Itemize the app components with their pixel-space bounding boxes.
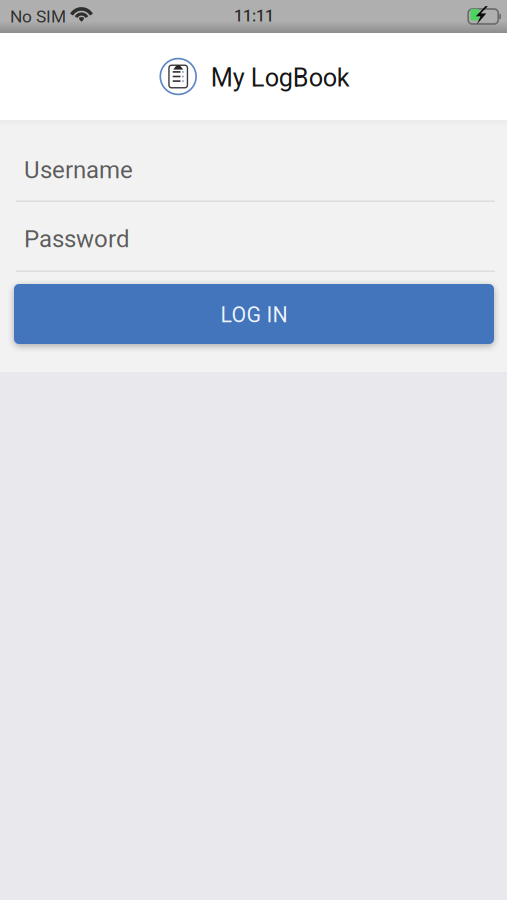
staticText: My LogBook bbox=[211, 63, 350, 93]
staticText: Username bbox=[24, 156, 133, 184]
button[interactable]: Username bbox=[0, 120, 507, 200]
staticText: Password bbox=[24, 225, 130, 253]
staticText: 11:11 bbox=[234, 7, 274, 25]
staticText: No SIM bbox=[10, 6, 66, 27]
button[interactable]: LOG IN bbox=[14, 284, 494, 344]
button[interactable]: My LogBook bbox=[158, 58, 348, 95]
button[interactable]: Password bbox=[0, 202, 507, 270]
staticText: LOG IN bbox=[220, 302, 287, 327]
